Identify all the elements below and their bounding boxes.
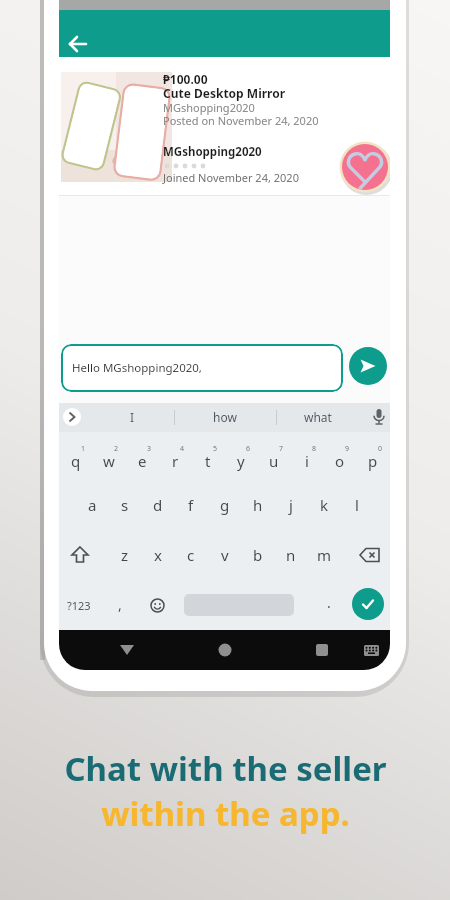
button[interactable] — [364, 645, 379, 656]
staticText: o — [335, 451, 345, 471]
staticText: i — [305, 451, 309, 471]
button[interactable]: how — [213, 409, 237, 425]
button[interactable]: x — [144, 542, 172, 568]
staticText: 4 — [180, 444, 185, 454]
button[interactable] — [218, 643, 232, 657]
staticText: g — [220, 495, 230, 515]
staticText: 2 — [114, 444, 119, 454]
staticText: a — [88, 495, 97, 515]
button[interactable]: l — [343, 492, 371, 518]
button[interactable]: a — [78, 492, 106, 518]
button[interactable] — [63, 408, 81, 426]
button[interactable]: z — [111, 542, 139, 568]
button[interactable]: m — [310, 542, 338, 568]
button[interactable]: ?123 — [67, 598, 91, 613]
button[interactable] — [316, 644, 328, 656]
button[interactable]: h — [244, 492, 272, 518]
staticText: f — [188, 495, 194, 515]
staticText: n — [286, 545, 296, 565]
staticText: x — [154, 545, 162, 565]
button[interactable]: what — [304, 409, 332, 425]
staticText: Chat with the seller — [64, 746, 387, 791]
button[interactable]: y — [227, 448, 255, 474]
staticText: k — [320, 495, 329, 515]
button[interactable] — [150, 598, 165, 613]
button[interactable] — [69, 545, 91, 565]
button[interactable]: p — [359, 448, 387, 474]
staticText: MGshopping2020 — [163, 144, 262, 160]
staticText: MGshopping2020 — [163, 100, 255, 115]
button[interactable]: , — [118, 595, 122, 614]
staticText: within the app. — [101, 791, 350, 836]
button[interactable]: n — [277, 542, 305, 568]
button[interactable]: b — [244, 542, 272, 568]
button[interactable]: I — [130, 409, 135, 425]
staticText: m — [317, 545, 332, 565]
staticText: j — [289, 495, 293, 515]
button[interactable]: o — [326, 448, 354, 474]
staticText: Posted on November 24, 2020 — [163, 113, 319, 128]
button[interactable] — [349, 347, 387, 385]
button[interactable]: r — [161, 448, 189, 474]
staticText: 8 — [312, 444, 317, 454]
staticText: e — [138, 451, 147, 471]
staticText: s — [121, 495, 129, 515]
button[interactable]: e — [128, 448, 156, 474]
staticText: Joined November 24, 2020 — [163, 170, 299, 185]
button[interactable] — [371, 408, 387, 427]
button[interactable] — [120, 644, 134, 656]
staticText: ₱100.00 — [163, 71, 208, 87]
button[interactable]: Hello MGshopping2020, — [61, 344, 343, 392]
staticText: 7 — [279, 444, 284, 454]
button[interactable]: k — [310, 492, 338, 518]
staticText: z — [121, 545, 129, 565]
button[interactable]: q — [62, 448, 90, 474]
staticText: Hello MGshopping2020, — [72, 360, 202, 376]
staticText: q — [71, 451, 81, 471]
staticText: c — [187, 545, 195, 565]
button[interactable] — [352, 588, 384, 620]
staticText: u — [269, 451, 279, 471]
button[interactable]: v — [211, 542, 239, 568]
staticText: 1 — [81, 444, 86, 454]
button[interactable]: u — [260, 448, 288, 474]
staticText: w — [103, 451, 115, 471]
button[interactable]: f — [177, 492, 205, 518]
staticText: y — [237, 451, 245, 471]
button[interactable]: . — [327, 593, 331, 612]
staticText: t — [205, 451, 211, 471]
staticText: 9 — [345, 444, 350, 454]
button[interactable]: w — [95, 448, 123, 474]
staticText: b — [253, 545, 263, 565]
button[interactable]: i — [293, 448, 321, 474]
button[interactable]: g — [211, 492, 239, 518]
staticText: h — [253, 495, 263, 515]
button[interactable]: j — [277, 492, 305, 518]
staticText: 3 — [147, 444, 152, 454]
staticText: p — [368, 451, 378, 471]
staticText: d — [153, 495, 163, 515]
button[interactable] — [68, 34, 88, 54]
button[interactable]: c — [177, 542, 205, 568]
staticText: v — [221, 545, 229, 565]
button[interactable]: d — [144, 492, 172, 518]
staticText: r — [172, 451, 179, 471]
button[interactable]: t — [194, 448, 222, 474]
button[interactable] — [358, 546, 382, 564]
staticText: Cute Desktop Mirror — [163, 85, 286, 101]
button[interactable]: s — [111, 492, 139, 518]
staticText: 0 — [378, 444, 383, 454]
staticText: 6 — [246, 444, 251, 454]
staticText: 5 — [213, 444, 218, 454]
staticText: l — [355, 495, 359, 515]
